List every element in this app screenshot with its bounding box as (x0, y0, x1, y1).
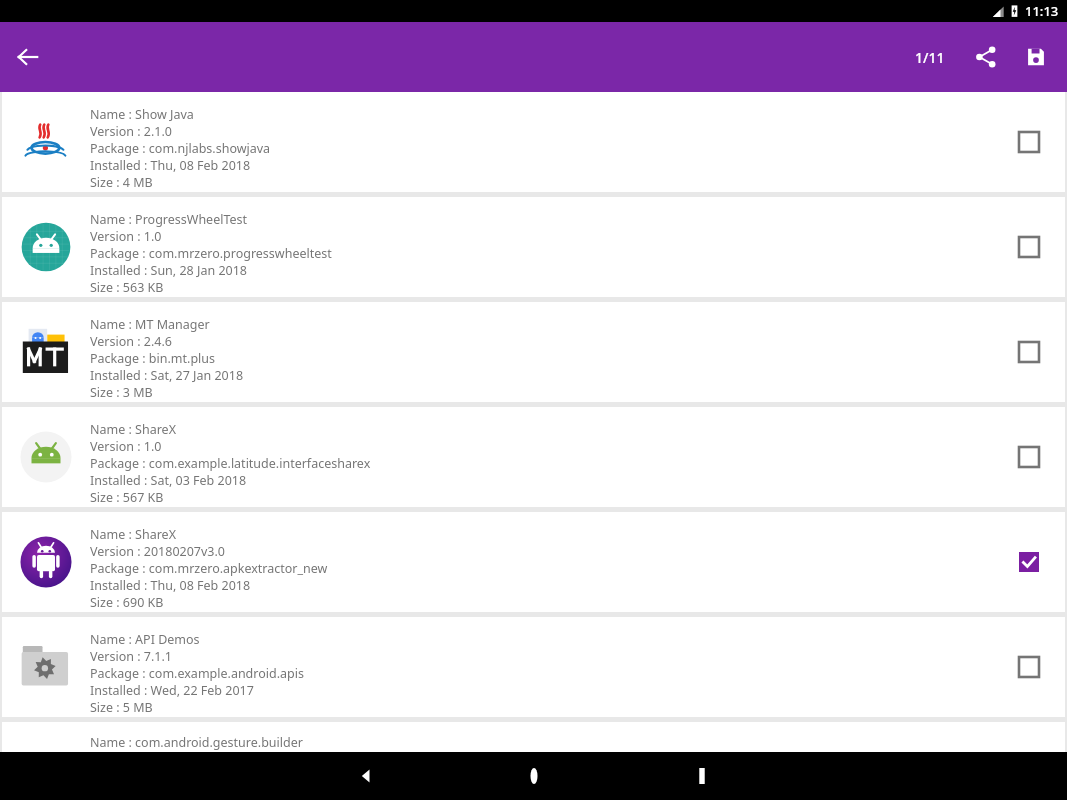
staticText: Name : MT Manager (90, 316, 210, 333)
button[interactable]: Back (338, 752, 394, 800)
staticText: Size : 5 MB (90, 699, 153, 716)
button[interactable]: Name : MT Manager (2, 302, 1065, 402)
staticText: Name : ProgressWheelTest (90, 211, 248, 228)
button[interactable]: Home (506, 752, 562, 800)
staticText: Size : 690 KB (90, 594, 164, 611)
staticText: Version : 1.0 (90, 438, 162, 455)
staticText: Name : API Demos (90, 631, 200, 648)
button[interactable]: Not selected (993, 617, 1065, 717)
staticText: Package : com.njlabs.showjava (90, 140, 271, 157)
staticText: Size : 567 KB (90, 489, 164, 506)
button[interactable]: Not selected (993, 302, 1065, 402)
staticText: Size : 4 MB (90, 174, 153, 191)
button[interactable]: Name : Show Java (2, 92, 1065, 192)
staticText: Version : 2.1.0 (90, 123, 172, 140)
staticText: Version : 2.4.6 (90, 333, 172, 350)
staticText: Installed : Sat, 03 Feb 2018 (90, 472, 247, 489)
staticText: Installed : Thu, 08 Feb 2018 (90, 577, 251, 594)
staticText: Installed : Thu, 08 Feb 2018 (90, 157, 251, 174)
button[interactable]: Selected (993, 512, 1065, 612)
staticText: Version : 1.0 (90, 228, 162, 245)
button[interactable]: Not selected (993, 407, 1065, 507)
staticText: 11:13 (1025, 2, 1059, 20)
staticText: Installed : Wed, 22 Feb 2017 (90, 682, 254, 699)
button[interactable]: Save (1015, 36, 1057, 78)
staticText: Package : com.mrzero.apkextractor_new (90, 560, 328, 577)
staticText: Name : com.android.gesture.builder (90, 734, 303, 751)
staticText: Name : Show Java (90, 106, 194, 123)
button[interactable]: Share (965, 36, 1007, 78)
staticText: Package : com.mrzero.progresswheeltest (90, 245, 332, 262)
button[interactable]: Not selected (993, 197, 1065, 297)
button[interactable]: 1/11 (909, 42, 951, 73)
button[interactable]: Name : ShareX (2, 512, 1065, 612)
button[interactable]: Name : API Demos (2, 617, 1065, 717)
button[interactable]: Name : ProgressWheelTest (2, 197, 1065, 297)
staticText: Installed : Sun, 28 Jan 2018 (90, 262, 247, 279)
button[interactable]: Not selected (993, 92, 1065, 192)
staticText: Version : 7.1.1 (90, 648, 172, 665)
staticText: Size : 3 MB (90, 384, 153, 401)
staticText: Version : 20180207v3.0 (90, 543, 226, 560)
staticText: Package : com.example.latitude.interface… (90, 455, 371, 472)
staticText: Size : 563 KB (90, 279, 164, 296)
staticText: 1/11 (915, 48, 945, 67)
button[interactable]: Back (8, 37, 48, 77)
staticText: Name : ShareX (90, 421, 176, 438)
staticText: Package : com.example.android.apis (90, 665, 304, 682)
staticText: Installed : Sat, 27 Jan 2018 (90, 367, 244, 384)
button[interactable]: Recents (674, 752, 730, 800)
button[interactable]: Name : com.android.gesture.builder (2, 722, 1065, 752)
staticText: Package : bin.mt.plus (90, 350, 216, 367)
staticText: Name : ShareX (90, 526, 176, 543)
button[interactable]: Name : ShareX (2, 407, 1065, 507)
